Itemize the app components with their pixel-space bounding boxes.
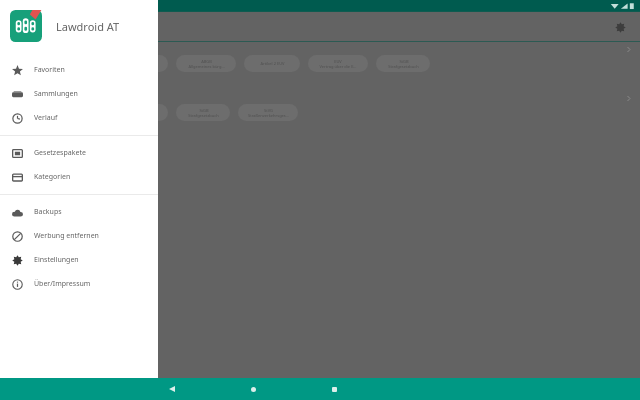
button[interactable]: StGB <box>176 104 230 121</box>
button[interactable]: Sammlungen <box>0 82 158 106</box>
staticText: Einstellungen <box>34 255 79 265</box>
button[interactable]: § 55 StGB <box>110 55 168 72</box>
staticText: Berufung zum Ver… <box>53 64 90 69</box>
staticText: Verwaltungsstraf… <box>51 146 87 151</box>
staticText: StGB <box>199 108 209 113</box>
staticText: Favoriten <box>34 65 65 75</box>
staticText: Einleitu.. <box>9 64 26 69</box>
staticText: Kategorien <box>34 172 71 182</box>
button[interactable]: Backups <box>0 200 158 224</box>
staticText: Gesetzespakete <box>34 148 86 158</box>
staticText: Artikel 2 EUV <box>260 61 285 66</box>
staticText: Einleitu… <box>8 146 26 151</box>
button[interactable]: Werbung entfernen <box>0 224 158 248</box>
button[interactable]: Einstellungen <box>0 248 158 272</box>
button[interactable]: StVG <box>40 137 98 154</box>
button[interactable]: Kategorien <box>0 165 158 189</box>
staticText: Sammlungen <box>34 89 78 99</box>
staticText: Strafgesetzbuch <box>388 64 419 69</box>
staticText: EUV <box>334 59 342 64</box>
button[interactable]: § 1 ABGB <box>2 137 32 154</box>
staticText: Lawdroid AT <box>56 19 120 34</box>
staticText: StVG <box>264 108 273 113</box>
button[interactable]: StGB <box>376 55 430 72</box>
staticText: Verlauf <box>34 113 58 123</box>
button[interactable]: Gesetze <box>320 378 480 400</box>
staticText: Vertrag über die E… <box>319 64 357 69</box>
staticText: StGB <box>399 59 409 64</box>
button[interactable]: Search <box>160 378 320 400</box>
button[interactable]: Recents <box>325 380 343 398</box>
staticText: Werbung entfernen <box>34 231 99 241</box>
button[interactable]: ABGB <box>110 104 168 121</box>
staticText: Straßenverkehrsges… <box>248 113 289 118</box>
staticText: Umfang zum Ver… <box>54 113 89 118</box>
staticText: Allgemeines bürg… <box>188 64 225 69</box>
button[interactable]: StVG <box>238 104 298 121</box>
button[interactable]: Favoriten <box>0 58 158 82</box>
button[interactable]: § 541 ABGB <box>40 104 102 121</box>
button[interactable]: Settings <box>609 16 631 38</box>
button[interactable]: Back <box>163 380 181 398</box>
button[interactable]: More <box>624 45 632 53</box>
button[interactable]: Artikel 2 EUV <box>244 55 300 72</box>
button[interactable]: § 447 ABGB <box>40 55 102 72</box>
button[interactable]: EUV <box>308 55 368 72</box>
staticText: Backups <box>34 207 62 217</box>
button[interactable]: Verlauf <box>0 106 158 130</box>
button[interactable]: § 1 ABGB <box>2 104 32 121</box>
button[interactable]: More <box>624 94 632 102</box>
button[interactable]: Lawdroid AT <box>0 0 158 52</box>
staticText: Über/Impressum <box>34 279 91 289</box>
staticText: Strafgesetzbuch <box>188 113 219 118</box>
button[interactable]: § 1 ABGB <box>2 55 32 72</box>
button[interactable]: Gesetzespakete <box>0 141 158 165</box>
staticText: Einleitu… <box>8 113 26 118</box>
button[interactable]: Über/Impressum <box>0 272 158 296</box>
button[interactable]: Home <box>244 380 262 398</box>
button[interactable]: ABGB <box>176 55 236 72</box>
staticText: ABGB <box>201 59 212 64</box>
